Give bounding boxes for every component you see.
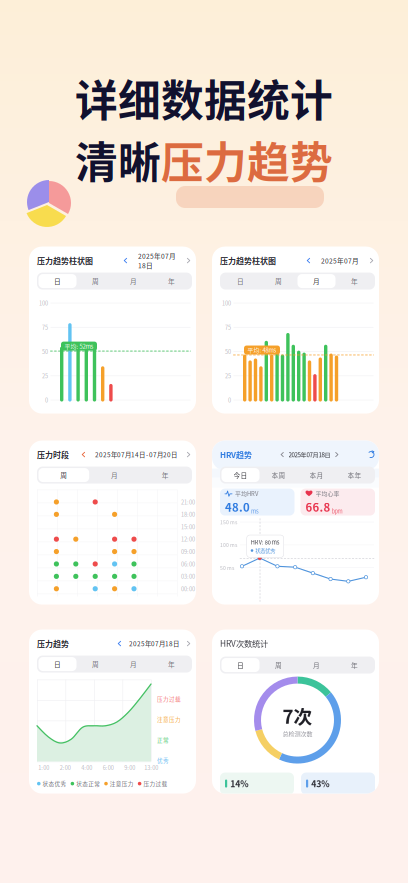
button[interactable]: 周 xyxy=(76,274,114,288)
button[interactable]: 上一天 xyxy=(279,451,285,458)
button[interactable]: 月 xyxy=(114,274,152,288)
staticText: 21:00 xyxy=(181,498,195,506)
button[interactable]: 年 xyxy=(152,274,190,288)
button[interactable]: 日 xyxy=(38,274,76,288)
button[interactable]: 上一个 xyxy=(116,640,123,647)
staticText: 100 xyxy=(39,299,48,307)
staticText: 状态正常 xyxy=(76,780,100,788)
staticText: 100 ms xyxy=(220,541,237,548)
staticText: 压力过载 xyxy=(143,780,167,788)
button[interactable]: 下一天 xyxy=(333,451,340,458)
staticText: 月 xyxy=(313,660,320,670)
staticText: 状态优秀 xyxy=(43,780,67,788)
staticText: 周 xyxy=(92,659,99,669)
button[interactable]: 本周 xyxy=(259,468,297,482)
staticText: 日 xyxy=(54,276,61,286)
staticText: 1:00 xyxy=(38,764,49,772)
staticText: 平均心率 xyxy=(315,489,339,498)
staticText: 平均: 48ms xyxy=(247,346,276,354)
button[interactable]: 上一个 xyxy=(80,451,87,458)
staticText: 压力时段 xyxy=(37,449,69,460)
button[interactable]: 日 xyxy=(221,274,259,288)
staticText: 状态优秀 xyxy=(255,547,275,554)
button[interactable]: 年 xyxy=(152,657,190,671)
staticText: 平均HRV xyxy=(235,489,258,498)
staticText: 周 xyxy=(92,276,99,286)
button[interactable]: 周 xyxy=(259,658,297,672)
staticText: 6:00 xyxy=(103,764,114,772)
staticText: 9:00 xyxy=(124,764,135,772)
staticText: 50 ms xyxy=(220,564,234,571)
staticText: 优秀 xyxy=(157,756,169,764)
button[interactable]: 月 xyxy=(114,657,152,671)
button[interactable]: 日 xyxy=(221,658,259,672)
staticText: 详细数据统计 xyxy=(75,67,333,129)
staticText: 年 xyxy=(162,470,169,480)
button[interactable]: 年 xyxy=(335,658,373,672)
staticText: 周 xyxy=(275,660,282,670)
button[interactable]: 本年 xyxy=(335,468,373,482)
button[interactable]: 下一个 xyxy=(185,451,192,458)
staticText: 2025年07月14日 - 07月20日 xyxy=(95,450,177,459)
staticText: 75 xyxy=(42,323,48,331)
staticText: 月 xyxy=(111,470,118,480)
button[interactable]: 月 xyxy=(297,658,335,672)
staticText: 12:00 xyxy=(181,535,195,543)
staticText: 0 xyxy=(228,396,231,404)
staticText: 本月 xyxy=(309,470,323,480)
button[interactable]: 下一个 xyxy=(185,640,192,647)
button[interactable]: 本月 xyxy=(297,468,335,482)
staticText: 压力趋势柱状图 xyxy=(37,255,93,266)
staticText: 正常 xyxy=(157,736,169,744)
staticText: bpm xyxy=(331,507,342,515)
staticText: 2:00 xyxy=(60,764,71,772)
button[interactable]: 周 xyxy=(38,468,89,482)
staticText: 50 xyxy=(42,347,48,356)
staticText: 年 xyxy=(351,276,358,286)
staticText: 压力过载 xyxy=(157,695,181,703)
staticText: 周 xyxy=(60,470,67,480)
button[interactable]: 下一个 xyxy=(368,257,375,264)
button[interactable]: 下一个 xyxy=(185,257,192,264)
staticText: 7次 xyxy=(282,702,312,729)
staticText: 压力趋势柱状图 xyxy=(220,255,276,266)
staticText: 压力趋势 xyxy=(161,129,333,191)
staticText: 清晰 xyxy=(75,129,161,191)
staticText: 03:00 xyxy=(181,572,195,580)
button[interactable]: 月 xyxy=(297,274,335,288)
staticText: 月 xyxy=(130,659,137,669)
staticText: 25 xyxy=(42,372,48,380)
staticText: 月 xyxy=(313,276,320,286)
staticText: HRV次数统计 xyxy=(220,637,268,649)
staticText: 本年 xyxy=(347,470,361,480)
staticText: 75 xyxy=(225,323,231,331)
staticText: 09:00 xyxy=(181,547,195,556)
staticText: 月 xyxy=(130,276,137,286)
staticText: 2025年07月18日 xyxy=(129,639,179,648)
button[interactable]: 日 xyxy=(38,657,76,671)
button[interactable]: 今日 xyxy=(221,468,259,482)
button[interactable]: 周 xyxy=(76,657,114,671)
staticText: 13:00 xyxy=(144,764,158,772)
staticText: 今日 xyxy=(233,470,247,480)
button[interactable]: 年 xyxy=(140,468,190,482)
staticText: 66.8 xyxy=(305,499,330,515)
staticText: 43% xyxy=(311,777,329,790)
button[interactable]: 月 xyxy=(89,468,140,482)
staticText: 100 xyxy=(222,299,231,307)
staticText: 15:00 xyxy=(181,523,195,531)
staticText: 周 xyxy=(275,276,282,286)
staticText: ms xyxy=(251,507,259,515)
staticText: 48.0 xyxy=(225,499,250,515)
staticText: HRV: 80 ms xyxy=(251,538,280,546)
staticText: 注意压力 xyxy=(157,715,181,723)
staticText: 总检测次数 xyxy=(282,729,312,738)
staticText: 25 xyxy=(225,372,231,380)
staticText: 14% xyxy=(230,777,248,790)
button[interactable]: 上一个 xyxy=(122,257,129,264)
button[interactable]: 上一个 xyxy=(305,257,312,264)
staticText: 日 xyxy=(237,660,244,670)
button[interactable]: 刷新 xyxy=(367,451,375,459)
button[interactable]: 年 xyxy=(335,274,373,288)
button[interactable]: 周 xyxy=(259,274,297,288)
